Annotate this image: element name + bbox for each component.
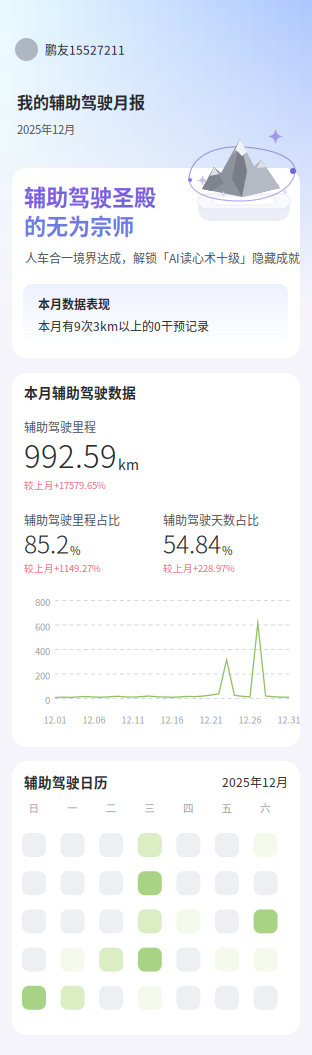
staticText: 的无为宗师 (24, 209, 134, 241)
staticText: km (118, 454, 139, 474)
staticText: 12.06 (82, 713, 105, 726)
staticText: 85.2 (24, 525, 69, 560)
staticText: 12.21 (199, 713, 222, 726)
staticText: 0 (45, 693, 50, 707)
staticText: 12.16 (160, 713, 183, 726)
staticText: 五 (221, 800, 232, 815)
staticText: 辅助驾驶日历 (24, 772, 108, 791)
staticText: 400 (35, 644, 50, 658)
staticText: 一 (67, 800, 78, 815)
staticText: 我的辅助驾驶月报 (17, 90, 145, 113)
staticText: 辅助驾驶天数占比 (163, 511, 259, 528)
staticText: 800 (35, 595, 50, 609)
staticText: 人车合一境界达成，解锁「AI读心术十级」隐藏成就 (25, 249, 300, 266)
staticText: 日 (28, 800, 39, 815)
staticText: 本月辅助驾驶数据 (24, 382, 136, 402)
staticText: 较上月+228.97% (163, 561, 235, 575)
staticText: % (70, 542, 81, 558)
staticText: 本月数据表现 (38, 295, 110, 312)
staticText: 200 (35, 668, 50, 682)
staticText: 较上月+1149.27% (24, 561, 101, 575)
staticText: 12.26 (238, 713, 261, 726)
staticText: 12.31 (277, 713, 300, 726)
staticText: 600 (35, 619, 50, 633)
staticText: 992.59 (24, 432, 117, 477)
staticText: 辅助驾驶圣殿 (24, 180, 156, 212)
staticText: 2025年12月 (17, 121, 75, 137)
button[interactable]: 鹏友15527211 (15, 38, 125, 61)
staticText: 12.11 (121, 713, 144, 726)
staticText: 54.84 (163, 525, 221, 560)
staticText: 辅助驾驶里程 (24, 418, 96, 435)
staticText: 二 (106, 800, 117, 815)
staticText: 本月有9次3km以上的0干预记录 (38, 317, 209, 334)
staticText: % (222, 542, 233, 558)
staticText: 辅助驾驶里程占比 (24, 511, 120, 528)
staticText: 较上月+17579.65% (24, 478, 106, 492)
staticText: 六 (260, 800, 271, 815)
staticText: 三 (144, 800, 155, 815)
staticText: 鹏友15527211 (45, 41, 125, 58)
staticText: 12.01 (43, 713, 66, 726)
staticText: 2025年12月 (222, 773, 288, 790)
staticText: 四 (183, 800, 194, 815)
